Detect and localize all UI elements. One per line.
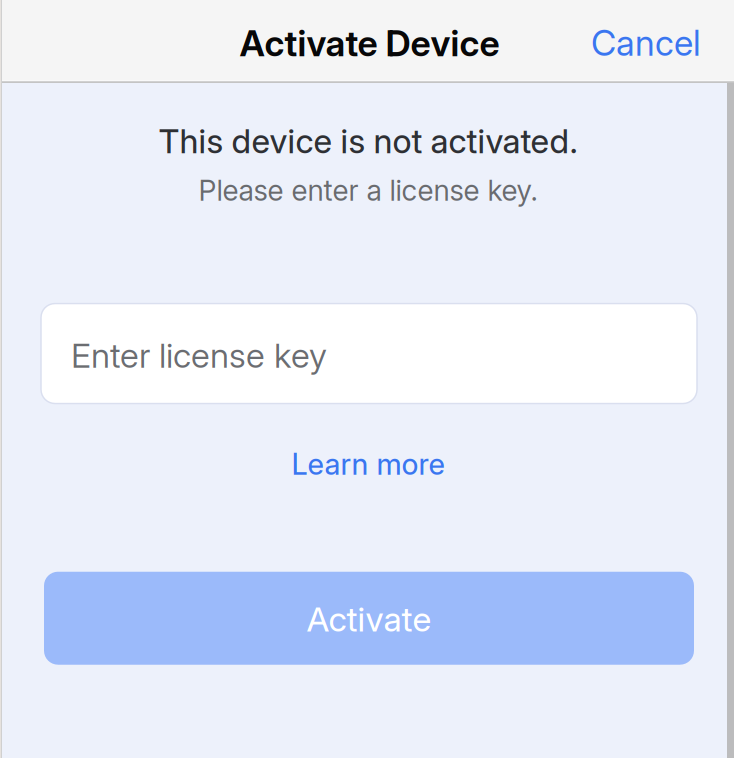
staticText: Please enter a license key. <box>198 173 537 208</box>
staticText: Enter license key <box>71 335 327 376</box>
staticText: Learn more <box>291 446 444 482</box>
staticText: Cancel <box>591 22 701 64</box>
button[interactable]: Activate <box>44 572 694 665</box>
staticText: Activate Device <box>239 22 499 65</box>
button[interactable]: Learn more <box>281 443 454 485</box>
staticText: This device is not activated. <box>158 121 577 161</box>
staticText: Activate <box>306 599 431 640</box>
button[interactable]: Cancel <box>571 0 734 83</box>
button[interactable]: Enter license key <box>41 303 697 403</box>
